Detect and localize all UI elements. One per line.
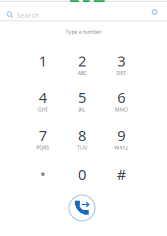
- button[interactable]: 0: [62, 156, 101, 194]
- button[interactable]: 8: [62, 117, 101, 155]
- staticText: *: [40, 169, 45, 182]
- button[interactable]: 5: [62, 79, 101, 117]
- button[interactable]: 7: [23, 117, 62, 155]
- staticText: TUV: [77, 144, 87, 151]
- staticText: 9: [117, 126, 125, 145]
- staticText: MNO: [115, 106, 128, 113]
- staticText: GHI: [38, 106, 48, 113]
- button[interactable]: 3: [102, 42, 141, 80]
- staticText: 0: [78, 165, 86, 184]
- staticText: 3: [117, 51, 125, 71]
- button[interactable]: 2: [62, 42, 101, 80]
- staticText: 6: [117, 88, 125, 107]
- staticText: 1: [39, 51, 47, 71]
- staticText: Search: [17, 11, 39, 20]
- button[interactable]: Call: [67, 193, 97, 223]
- button[interactable]: #: [102, 156, 141, 194]
- staticText: 2: [78, 51, 86, 71]
- staticText: JKL: [78, 106, 85, 113]
- button[interactable]: Voice search: [147, 4, 163, 20]
- staticText: PQRS: [36, 144, 49, 151]
- button[interactable]: 4: [23, 79, 62, 117]
- staticText: 8: [78, 126, 86, 145]
- staticText: WXYZ: [114, 144, 128, 151]
- staticText: ABC: [77, 69, 86, 77]
- button[interactable]: *: [23, 156, 62, 194]
- button[interactable]: Search: [0, 2, 144, 21]
- staticText: 7: [39, 126, 47, 145]
- staticText: #: [117, 165, 126, 184]
- staticText: DEF: [116, 69, 126, 77]
- staticText: 4: [39, 88, 47, 107]
- staticText: 5: [78, 88, 86, 107]
- button[interactable]: 9: [102, 117, 141, 155]
- button[interactable]: 1: [23, 42, 62, 80]
- button[interactable]: 6: [102, 79, 141, 117]
- staticText: Type a number: [65, 28, 101, 35]
